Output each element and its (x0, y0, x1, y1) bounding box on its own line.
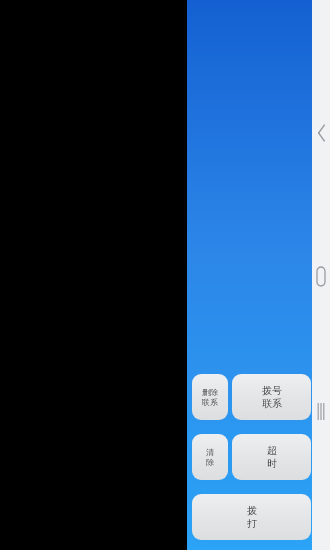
button[interactable]: Recent apps (312, 396, 330, 426)
button[interactable]: 超 时 (232, 434, 311, 480)
button[interactable]: Home (312, 261, 330, 291)
button[interactable]: 删除 联系 (192, 374, 228, 420)
button[interactable]: Back (312, 118, 330, 148)
staticText: 清 除 (206, 447, 214, 467)
staticText: 超 时 (267, 444, 277, 470)
staticText: 拨 打 (247, 504, 257, 530)
staticText: 拨号 联系 (262, 384, 282, 410)
button[interactable]: 拨 打 (192, 494, 311, 540)
button[interactable]: 拨号 联系 (232, 374, 311, 420)
staticText: 删除 联系 (202, 387, 218, 407)
button[interactable]: 清 除 (192, 434, 228, 480)
